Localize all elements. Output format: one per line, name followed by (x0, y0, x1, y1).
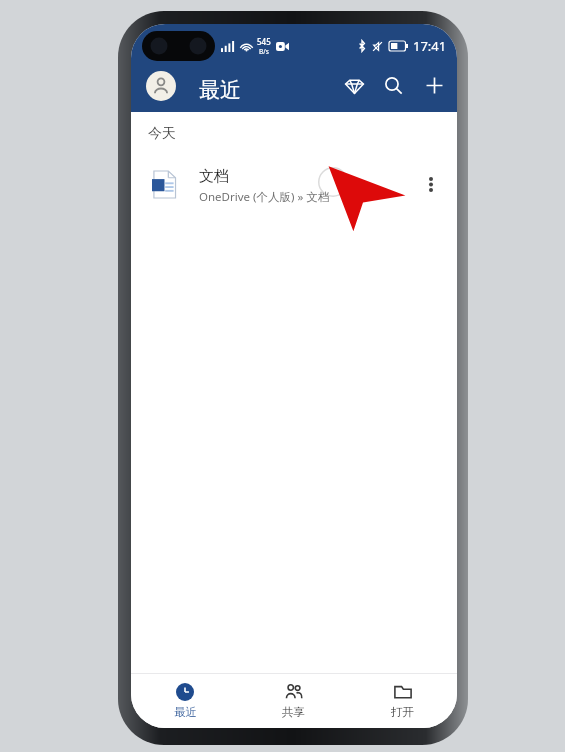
button[interactable]: 打开 (348, 674, 457, 728)
staticText: 545 (257, 36, 271, 47)
button[interactable]: 文档 (131, 157, 457, 213)
button[interactable]: More options (415, 168, 447, 200)
staticText: 打开 (391, 705, 414, 719)
button[interactable]: 最近 (131, 674, 239, 728)
staticText: 今天 (148, 125, 176, 143)
button[interactable]: 共享 (239, 674, 348, 728)
staticText: 最近 (199, 77, 241, 103)
button[interactable]: New (417, 68, 451, 102)
staticText: B/s (259, 47, 269, 56)
staticText: 共享 (282, 705, 305, 719)
staticText: OneDrive (个人版) » 文档 (199, 189, 330, 205)
staticText: 最近 (174, 705, 197, 719)
staticText: 17:41 (413, 37, 447, 55)
button[interactable]: Search (376, 68, 410, 102)
button[interactable]: Account (146, 71, 176, 101)
button[interactable]: Premium (337, 68, 371, 102)
staticText: 文档 (199, 167, 229, 186)
